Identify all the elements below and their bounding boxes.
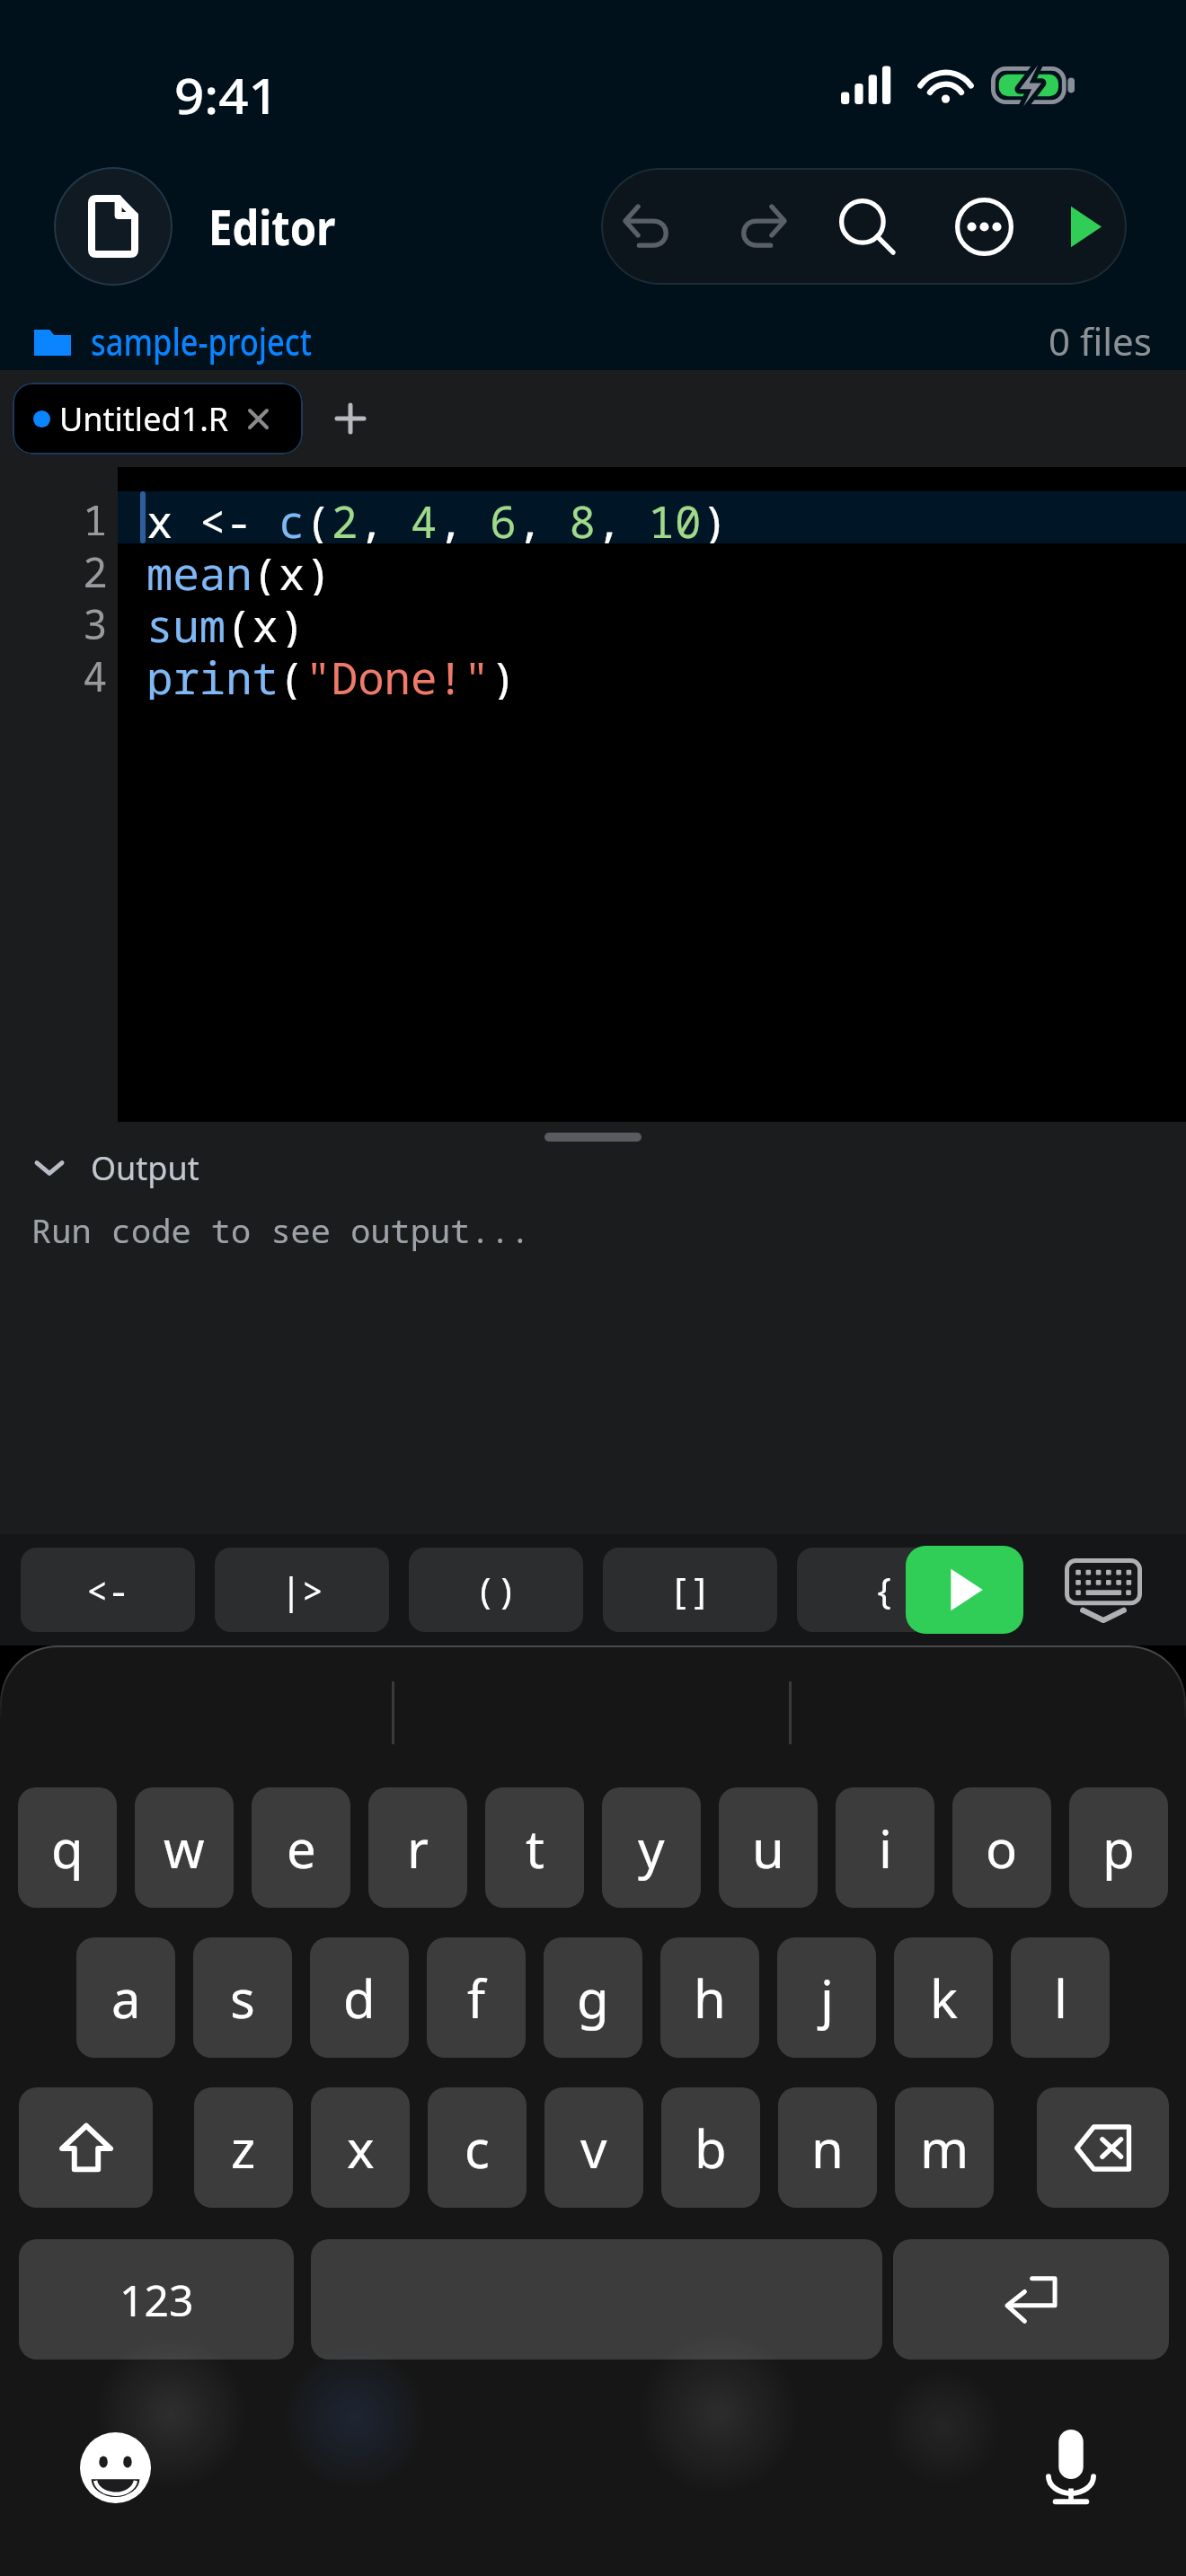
button[interactable]: o bbox=[952, 1787, 1051, 1908]
button[interactable]: l bbox=[1011, 1937, 1110, 2058]
button[interactable]: v bbox=[544, 2087, 643, 2208]
staticText: { bbox=[873, 1566, 895, 1614]
button[interactable]: File bbox=[54, 167, 173, 286]
button[interactable]: p bbox=[1069, 1787, 1168, 1908]
staticText: mean(x) bbox=[146, 543, 332, 595]
staticText: c bbox=[465, 2113, 490, 2183]
staticText: s bbox=[230, 1963, 255, 2033]
button[interactable]: Run bbox=[1042, 168, 1127, 285]
button[interactable]: f bbox=[427, 1937, 526, 2058]
staticText: l bbox=[1054, 1963, 1067, 2033]
staticText: print("Done!") bbox=[146, 648, 517, 700]
button[interactable]: Search bbox=[818, 168, 916, 285]
staticText: n bbox=[811, 2113, 844, 2183]
staticText: m bbox=[920, 2113, 969, 2183]
button[interactable]: [] bbox=[603, 1548, 777, 1632]
staticText: z bbox=[231, 2113, 256, 2183]
button[interactable]: Redo bbox=[709, 168, 808, 285]
staticText: d bbox=[343, 1963, 376, 2033]
staticText: <- bbox=[86, 1566, 129, 1614]
staticText: g bbox=[577, 1963, 609, 2033]
staticText: r bbox=[407, 1813, 429, 1883]
button[interactable]: j bbox=[777, 1937, 876, 2058]
button[interactable]: New file bbox=[315, 384, 385, 454]
staticText: () bbox=[474, 1566, 518, 1614]
button[interactable]: y bbox=[602, 1787, 701, 1908]
button[interactable]: h bbox=[660, 1937, 759, 2058]
staticText: e bbox=[287, 1813, 316, 1883]
button[interactable]: c bbox=[428, 2087, 527, 2208]
button[interactable]: Output bbox=[0, 1142, 1186, 1194]
button[interactable]: |> bbox=[215, 1548, 389, 1632]
staticText: a bbox=[111, 1963, 141, 2033]
staticText: y bbox=[638, 1813, 665, 1883]
staticText: x <- c(2, 4, 6, 8, 10) bbox=[146, 491, 728, 543]
staticText: 9:41 bbox=[174, 61, 279, 128]
button[interactable]: a bbox=[76, 1937, 175, 2058]
button[interactable]: () bbox=[409, 1548, 583, 1632]
staticText: Output bbox=[91, 1146, 199, 1190]
staticText: 3 bbox=[83, 595, 108, 648]
staticText: |> bbox=[280, 1566, 323, 1614]
staticText: p bbox=[1102, 1813, 1135, 1883]
button[interactable]: Return bbox=[893, 2239, 1169, 2360]
button[interactable]: k bbox=[894, 1937, 993, 2058]
button[interactable]: b bbox=[661, 2087, 760, 2208]
button[interactable]: i bbox=[836, 1787, 934, 1908]
button[interactable]: z bbox=[194, 2087, 293, 2208]
button[interactable]: More bbox=[934, 168, 1033, 285]
button[interactable]: Space bbox=[311, 2239, 882, 2360]
button[interactable]: r bbox=[368, 1787, 467, 1908]
staticText: 4 bbox=[83, 648, 108, 700]
button[interactable]: s bbox=[193, 1937, 292, 2058]
button[interactable]: 123 bbox=[19, 2239, 294, 2360]
button[interactable]: Run bbox=[906, 1546, 1023, 1634]
button[interactable]: Backspace bbox=[1037, 2087, 1169, 2208]
staticText: q bbox=[51, 1813, 84, 1883]
button[interactable]: e bbox=[252, 1787, 350, 1908]
button[interactable]: m bbox=[895, 2087, 994, 2208]
button[interactable]: t bbox=[485, 1787, 584, 1908]
button[interactable]: Untitled1.R bbox=[13, 383, 303, 454]
button[interactable]: Dictate bbox=[1035, 2426, 1107, 2509]
staticText: f bbox=[467, 1963, 485, 2033]
staticText: 2 bbox=[83, 543, 108, 595]
staticText: 1 bbox=[83, 491, 108, 543]
staticText: o bbox=[986, 1813, 1018, 1883]
staticText: 0 files bbox=[1049, 315, 1152, 366]
staticText: Run code to see output... bbox=[31, 1207, 530, 1252]
staticText: w bbox=[164, 1813, 205, 1883]
button[interactable]: d bbox=[310, 1937, 409, 2058]
button[interactable]: Shift bbox=[19, 2087, 153, 2208]
staticText: j bbox=[820, 1963, 834, 2033]
button[interactable]: <- bbox=[21, 1548, 195, 1632]
staticText: x bbox=[347, 2113, 375, 2183]
button[interactable]: x bbox=[311, 2087, 410, 2208]
staticText: h bbox=[694, 1963, 726, 2033]
button[interactable]: Hide keyboard bbox=[1055, 1546, 1152, 1634]
staticText: [] bbox=[668, 1566, 712, 1614]
staticText: k bbox=[930, 1963, 958, 2033]
staticText: u bbox=[752, 1813, 784, 1883]
button[interactable]: w bbox=[135, 1787, 234, 1908]
button[interactable]: Emoji bbox=[79, 2431, 151, 2503]
button[interactable]: n bbox=[778, 2087, 877, 2208]
button[interactable]: q bbox=[18, 1787, 117, 1908]
staticText: i bbox=[879, 1813, 892, 1883]
staticText: t bbox=[526, 1813, 544, 1883]
staticText: 123 bbox=[119, 2271, 194, 2329]
staticText: sample-project bbox=[91, 315, 312, 366]
button[interactable]: g bbox=[544, 1937, 642, 2058]
staticText: Untitled1.R bbox=[59, 397, 229, 441]
staticText: v bbox=[580, 2113, 607, 2183]
button[interactable]: { bbox=[797, 1548, 971, 1632]
staticText: Editor bbox=[208, 194, 336, 259]
staticText: sum(x) bbox=[146, 595, 305, 648]
button[interactable]: Undo bbox=[602, 168, 701, 285]
staticText: b bbox=[695, 2113, 727, 2183]
button[interactable]: u bbox=[719, 1787, 818, 1908]
